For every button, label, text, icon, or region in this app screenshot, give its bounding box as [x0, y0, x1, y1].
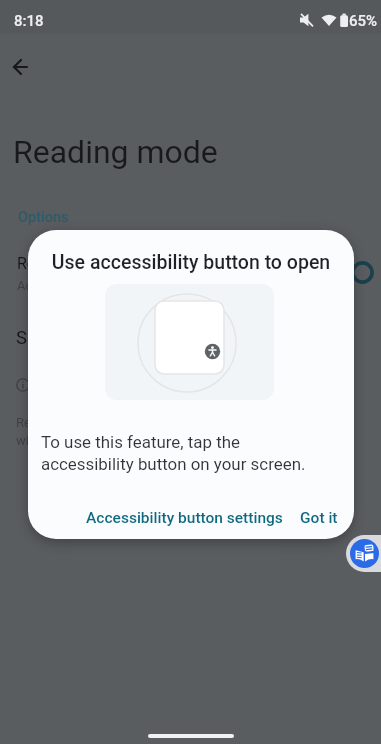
staticText: Options [18, 209, 69, 226]
staticText: Reading mode may not work on some apps, … [16, 415, 269, 448]
staticText: Accessibility button settings [86, 509, 283, 527]
staticText: Use accessibility button to open [28, 251, 354, 274]
button[interactable]: Got it [296, 505, 342, 531]
button[interactable] [2, 55, 38, 79]
button[interactable] [346, 535, 381, 572]
button[interactable]: Reading mode shortcut [0, 244, 381, 300]
staticText: Size and display [16, 327, 149, 349]
staticText: Reading mode shortcut [17, 254, 184, 273]
staticText: Reading mode [13, 133, 218, 171]
staticText: 8:18 [14, 12, 44, 30]
staticText: To use this feature, tap the accessibili… [41, 432, 306, 474]
staticText: 65% [349, 12, 378, 30]
staticText: Activate with accessibility button [17, 278, 207, 293]
button[interactable]: Accessibility button settings [82, 505, 287, 531]
staticText: Got it [300, 509, 338, 527]
